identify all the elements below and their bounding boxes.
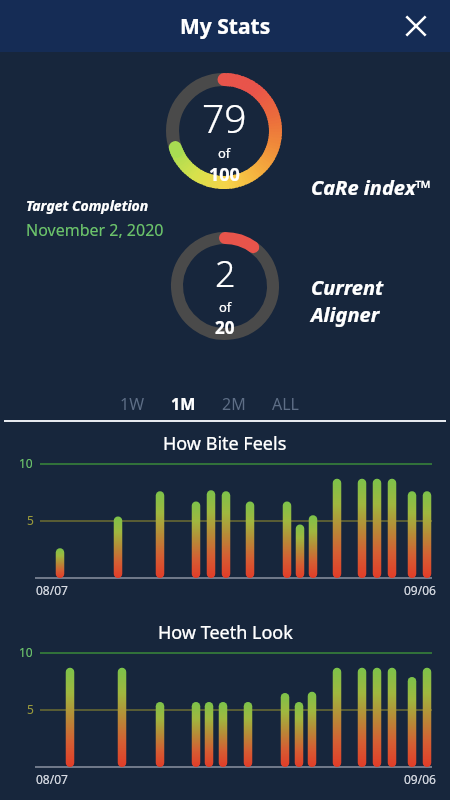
staticText: 100	[209, 162, 240, 187]
staticText: 09/06	[404, 582, 436, 598]
staticText: of	[218, 144, 231, 162]
staticText: 79	[202, 91, 247, 144]
staticText: Aligner	[311, 301, 380, 328]
staticText: 5	[27, 512, 34, 528]
staticText: 20	[215, 316, 235, 339]
staticText: 08/07	[36, 582, 68, 598]
button[interactable]: 1M	[169, 389, 198, 419]
staticText: 5	[27, 701, 34, 717]
staticText: My Stats	[180, 12, 271, 41]
staticText: 08/07	[36, 771, 68, 787]
staticText: 1M	[171, 393, 196, 415]
button[interactable]: ALL	[270, 389, 301, 419]
staticText: 10	[19, 644, 33, 660]
staticText: ALL	[272, 393, 299, 415]
staticText: 1W	[120, 393, 145, 415]
staticText: How Teeth Look	[158, 620, 293, 645]
staticText: Target Completion	[26, 196, 149, 215]
button[interactable]: 2M	[220, 389, 248, 419]
staticText: Current	[311, 274, 384, 301]
staticText: How Bite Feels	[163, 431, 287, 456]
staticText: CaRe index™	[311, 174, 432, 201]
staticText: of	[219, 298, 232, 316]
button[interactable]: Close	[394, 4, 438, 48]
staticText: 2	[215, 249, 236, 298]
button[interactable]: 1W	[118, 389, 147, 419]
staticText: 2M	[222, 393, 246, 415]
staticText: November 2, 2020	[26, 219, 164, 241]
staticText: 10	[19, 455, 33, 471]
staticText: 09/06	[404, 771, 436, 787]
